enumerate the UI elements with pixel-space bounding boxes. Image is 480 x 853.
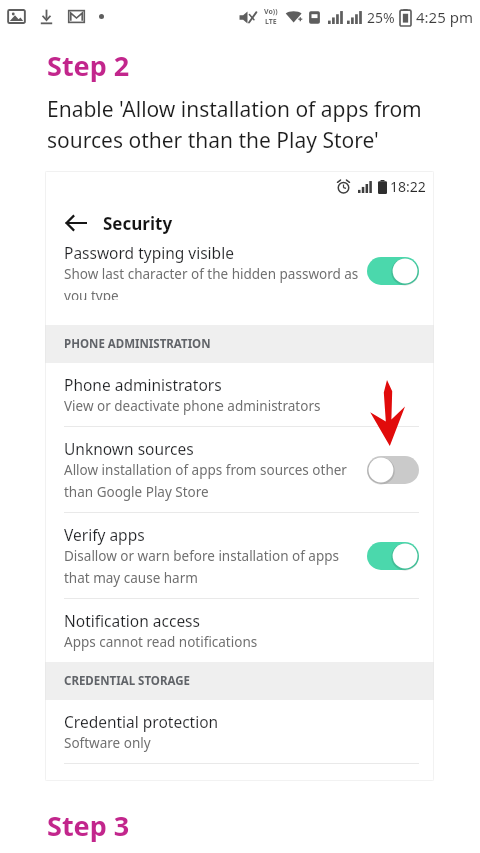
staticText: Show last character of the hidden passwo… xyxy=(64,265,359,300)
staticText: Unknown sources xyxy=(64,438,194,459)
staticText: 18:22 xyxy=(390,177,426,196)
staticText: 4:25 pm xyxy=(416,7,473,27)
staticText: Disallow or warn before installation of … xyxy=(64,547,359,587)
staticText: Step 2 xyxy=(47,47,130,84)
button[interactable]: Notification access xyxy=(45,599,434,662)
staticText: Verify apps xyxy=(64,524,145,545)
staticText: Phone administrators xyxy=(64,374,222,395)
button[interactable]: Back xyxy=(61,208,91,238)
staticText: Allow installation of apps from sources … xyxy=(64,461,359,501)
staticText: Credential protection xyxy=(64,711,219,732)
staticText: Apps cannot read notifications xyxy=(64,633,258,651)
staticText: Step 3 xyxy=(47,807,130,844)
button[interactable]: Switch on xyxy=(367,256,419,286)
staticText: 25% xyxy=(367,8,395,27)
button[interactable]: Credential protection xyxy=(45,700,434,764)
staticText: Vo)) xyxy=(264,7,278,17)
staticText: Security xyxy=(103,212,173,235)
staticText: Notification access xyxy=(64,610,200,631)
staticText: Enable 'Allow installation of apps from … xyxy=(47,95,452,154)
staticText: Software only xyxy=(64,734,151,752)
button[interactable]: Phone administrators xyxy=(45,363,434,427)
staticText: View or deactivate phone administrators xyxy=(64,397,321,415)
staticText: LTE xyxy=(265,17,277,27)
staticText: CREDENTIAL STORAGE xyxy=(64,673,190,689)
button[interactable]: Unknown sources xyxy=(45,427,434,513)
button[interactable]: Verify apps xyxy=(45,513,434,599)
button[interactable]: Switch on xyxy=(367,541,419,571)
button[interactable]: Switch off xyxy=(367,455,419,485)
staticText: PHONE ADMINISTRATION xyxy=(64,336,211,352)
button[interactable]: Password typing visible xyxy=(45,245,434,311)
staticText: Password typing visible xyxy=(64,245,234,263)
